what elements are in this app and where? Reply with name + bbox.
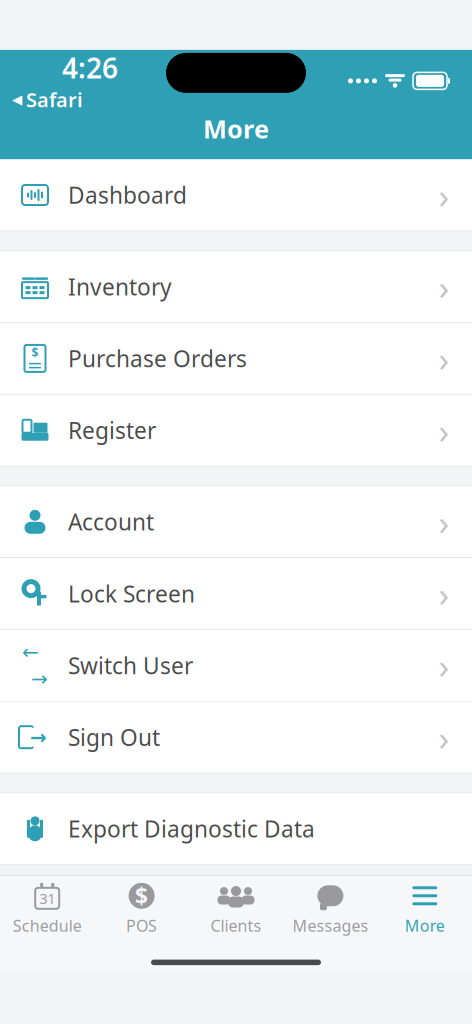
- staticText: ›: [438, 335, 449, 381]
- button[interactable]: Account: [0, 486, 472, 557]
- staticText: Schedule: [13, 915, 82, 936]
- button[interactable]: $: [0, 323, 472, 394]
- button[interactable]: 31: [0, 880, 94, 938]
- staticText: →: [31, 667, 48, 690]
- button[interactable]: Lock Screen: [0, 558, 472, 629]
- staticText: Switch User: [68, 650, 193, 680]
- staticText: Clients: [210, 915, 261, 936]
- staticText: ›: [438, 714, 449, 760]
- staticText: ◀: [12, 92, 22, 107]
- staticText: More: [405, 915, 445, 936]
- button[interactable]: $: [94, 880, 189, 938]
- staticText: ›: [438, 571, 449, 617]
- staticText: POS: [126, 915, 157, 936]
- staticText: ›: [438, 407, 449, 453]
- staticText: ›: [438, 172, 449, 218]
- staticText: Lock Screen: [68, 579, 195, 609]
- staticText: $: [31, 344, 38, 360]
- staticText: ›: [438, 642, 449, 688]
- button[interactable]: ◀: [0, 86, 83, 113]
- staticText: ›: [438, 264, 449, 310]
- button[interactable]: Export Diagnostic Data: [0, 793, 472, 864]
- button[interactable]: Register: [0, 395, 472, 466]
- staticText: Purchase Orders: [68, 343, 247, 373]
- staticText: Export Diagnostic Data: [68, 814, 315, 844]
- staticText: More: [203, 112, 269, 145]
- staticText: Safari: [26, 86, 83, 113]
- staticText: ←: [22, 641, 39, 663]
- staticText: Register: [68, 415, 156, 445]
- button[interactable]: More: [378, 880, 472, 938]
- staticText: 4:26: [62, 49, 118, 86]
- staticText: Account: [68, 507, 154, 537]
- button[interactable]: ←: [0, 630, 472, 701]
- button[interactable]: Dashboard: [0, 159, 472, 230]
- staticText: Sign Out: [68, 722, 160, 752]
- button[interactable]: Messages: [283, 880, 378, 938]
- staticText: $: [135, 881, 148, 911]
- staticText: 31: [39, 889, 55, 908]
- button[interactable]: Clients: [189, 880, 283, 938]
- staticText: Messages: [292, 915, 368, 936]
- staticText: →: [30, 726, 47, 749]
- button[interactable]: Inventory: [0, 251, 472, 322]
- staticText: Inventory: [68, 272, 172, 302]
- button[interactable]: →: [0, 702, 472, 773]
- staticText: ›: [438, 499, 449, 545]
- staticText: Dashboard: [68, 180, 187, 210]
